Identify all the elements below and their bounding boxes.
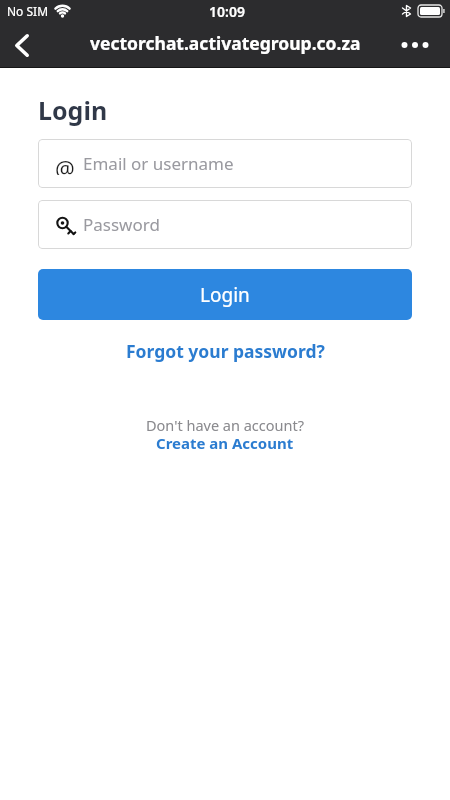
button[interactable]: Forgot your password? bbox=[126, 339, 325, 363]
button[interactable]: Login bbox=[38, 269, 412, 320]
button[interactable] bbox=[4, 27, 40, 63]
staticText: Password bbox=[83, 213, 160, 236]
button[interactable]: Create an Account bbox=[156, 433, 294, 453]
button[interactable]: Password bbox=[38, 200, 412, 249]
staticText: 10:09 bbox=[209, 2, 245, 21]
staticText: Don't have an account? bbox=[146, 415, 304, 435]
button[interactable] bbox=[398, 28, 432, 62]
staticText: @ bbox=[55, 153, 75, 175]
staticText: No SIM bbox=[7, 3, 49, 19]
staticText: vectorchat.activategroup.co.za bbox=[90, 31, 361, 55]
staticText: Email or username bbox=[83, 152, 234, 175]
staticText: Login bbox=[38, 93, 108, 127]
button[interactable]: @ bbox=[38, 139, 412, 188]
staticText: Login bbox=[200, 282, 250, 308]
